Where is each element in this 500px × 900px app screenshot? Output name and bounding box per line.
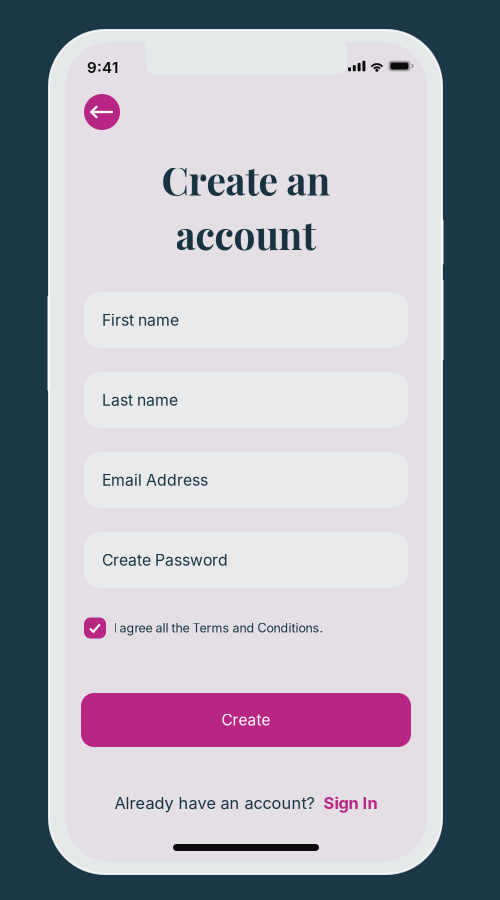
- button[interactable]: Sign In: [323, 793, 377, 813]
- button[interactable]: Email Address: [84, 452, 408, 508]
- button[interactable]: I agree all the Terms and Conditions.: [84, 614, 408, 642]
- staticText: 9:41: [87, 58, 118, 77]
- staticText: I agree all the Terms and Conditions.: [113, 620, 323, 635]
- button[interactable]: First name: [84, 292, 408, 348]
- staticText: Create an: [161, 154, 330, 205]
- staticText: Email Address: [102, 470, 208, 489]
- staticText: account: [175, 208, 316, 260]
- staticText: Sign In: [323, 793, 377, 813]
- staticText: Create: [221, 711, 270, 729]
- staticText: Last name: [102, 390, 178, 409]
- button[interactable]: Back: [84, 94, 120, 130]
- button[interactable]: Create: [81, 693, 411, 747]
- staticText: First name: [102, 310, 179, 329]
- button[interactable]: Create Password: [84, 532, 408, 588]
- staticText: Create Password: [102, 550, 228, 569]
- button[interactable]: Last name: [84, 372, 408, 428]
- staticText: Already have an account?: [114, 793, 314, 813]
